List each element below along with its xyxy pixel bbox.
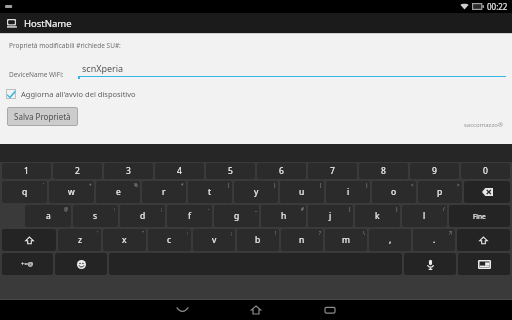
button[interactable]: Switch keyboard	[458, 253, 510, 275]
staticText: ,	[389, 234, 392, 246]
staticText: c	[167, 234, 172, 246]
button[interactable]: Emoji	[55, 253, 107, 275]
staticText: *	[181, 182, 184, 188]
staticText: q	[22, 186, 28, 198]
button[interactable]: h	[261, 205, 306, 227]
staticText: e	[116, 186, 121, 198]
staticText: j	[329, 210, 332, 222]
staticText: (	[349, 206, 351, 212]
button[interactable]: y	[234, 181, 278, 203]
staticText: /	[443, 206, 445, 212]
staticText: %	[134, 182, 138, 188]
staticText: g	[234, 210, 240, 222]
staticText: +=@	[21, 260, 34, 268]
staticText: _	[255, 206, 257, 212]
button[interactable]: f	[167, 205, 212, 227]
button[interactable]: scnXperia	[78, 62, 506, 79]
staticText: )	[396, 206, 398, 212]
staticText: DeviceName WiFi:	[9, 70, 64, 79]
button[interactable]: 3	[104, 163, 153, 179]
button[interactable]: Recent apps	[313, 299, 347, 320]
button[interactable]: t	[188, 181, 232, 203]
button[interactable]: 0	[461, 163, 510, 179]
button[interactable]: Salva Proprietà	[7, 107, 78, 126]
staticText: b	[255, 234, 261, 246]
staticText: !	[275, 230, 277, 236]
button[interactable]: 9	[410, 163, 459, 179]
button[interactable]: Home	[239, 299, 273, 320]
button[interactable]: x	[103, 229, 146, 251]
button[interactable]: q	[2, 181, 47, 203]
button[interactable]: Shift	[457, 229, 510, 251]
button[interactable]: b	[237, 229, 279, 251]
staticText: 00:22	[487, 1, 508, 12]
button[interactable]: Voice input	[404, 253, 456, 275]
button[interactable]: Hide keyboard	[165, 299, 199, 320]
button[interactable]: 7	[308, 163, 357, 179]
button[interactable]: Fine	[449, 205, 510, 227]
button[interactable]: p	[418, 181, 462, 203]
button[interactable]: r	[142, 181, 186, 203]
button[interactable]: l	[402, 205, 447, 227]
staticText: x	[122, 234, 127, 246]
button[interactable]: 2	[53, 163, 102, 179]
staticText: HostName	[24, 17, 72, 30]
staticText: z	[78, 234, 82, 246]
button[interactable]: o	[372, 181, 416, 203]
button[interactable]: m	[325, 229, 367, 251]
staticText: `	[43, 182, 45, 188]
staticText: :	[187, 230, 189, 236]
button[interactable]: j	[308, 205, 353, 227]
staticText: y	[254, 186, 259, 198]
button[interactable]: e	[96, 181, 140, 203]
staticText: d	[140, 210, 146, 222]
staticText: p	[437, 186, 443, 198]
button[interactable]: 1	[2, 163, 51, 179]
button[interactable]: k	[355, 205, 400, 227]
staticText: Salva Proprietà	[14, 111, 71, 122]
button[interactable]: Backspace	[464, 181, 510, 203]
button[interactable]: 8	[359, 163, 408, 179]
staticText: #	[301, 206, 304, 212]
button[interactable]: Aggiorna all'avvio del dispositivo	[6, 89, 136, 99]
button[interactable]: u	[280, 181, 324, 203]
staticText: saccomazzo®	[464, 121, 503, 129]
staticText: 9	[432, 165, 437, 177]
button[interactable]: v	[193, 229, 235, 251]
staticText: @	[64, 206, 69, 212]
staticText: >	[457, 182, 460, 188]
button[interactable]: +=@	[2, 253, 53, 275]
button[interactable]: 5	[206, 163, 255, 179]
staticText: u	[299, 186, 305, 198]
button[interactable]: 6	[257, 163, 306, 179]
staticText: )	[366, 182, 368, 188]
staticText: w	[68, 186, 75, 198]
button[interactable]: a	[25, 205, 71, 227]
staticText: '	[97, 230, 99, 236]
button[interactable]: Shift	[2, 229, 56, 251]
staticText: 5	[228, 165, 233, 177]
button[interactable]: ,	[369, 229, 411, 251]
button[interactable]: i	[326, 181, 370, 203]
staticText: 7	[330, 165, 335, 177]
staticText: 0	[483, 165, 488, 177]
button[interactable]: c	[148, 229, 191, 251]
button[interactable]: w	[49, 181, 94, 203]
button[interactable]: g	[214, 205, 259, 227]
staticText: h	[281, 210, 287, 222]
button[interactable]: .	[413, 229, 455, 251]
staticText: r	[162, 186, 166, 198]
staticText: ;	[231, 230, 233, 236]
staticText: :	[114, 206, 116, 212]
staticText: 6	[279, 165, 284, 177]
button[interactable]: HostName	[0, 13, 512, 33]
button[interactable]: 4	[155, 163, 204, 179]
staticText: "	[142, 230, 144, 236]
staticText: ?	[319, 230, 321, 236]
staticText: 1	[24, 165, 29, 177]
button[interactable]: d	[120, 205, 165, 227]
button[interactable]: s	[73, 205, 118, 227]
button[interactable]: z	[58, 229, 101, 251]
button[interactable]: n	[281, 229, 323, 251]
